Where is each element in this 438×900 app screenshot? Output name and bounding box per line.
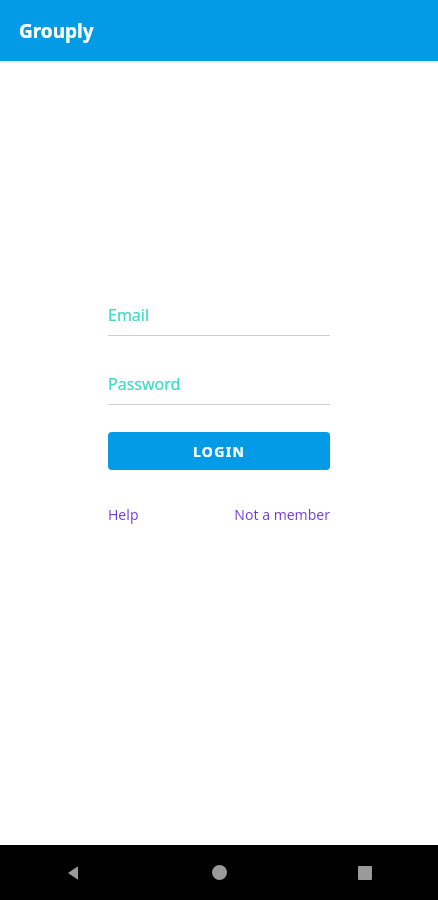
- button[interactable]: Help: [108, 505, 139, 524]
- button[interactable]: Password: [108, 368, 330, 405]
- button[interactable]: Recent apps: [292, 845, 438, 900]
- staticText: Help: [108, 505, 139, 524]
- staticText: Password: [108, 373, 181, 395]
- button[interactable]: Email: [108, 299, 330, 336]
- button[interactable]: Back: [0, 845, 146, 900]
- button[interactable]: LOGIN: [108, 432, 330, 470]
- staticText: Email: [108, 304, 150, 326]
- button[interactable]: Not a member: [234, 505, 330, 524]
- staticText: Not a member: [234, 505, 330, 524]
- button[interactable]: Home: [146, 845, 292, 900]
- staticText: LOGIN: [193, 442, 246, 461]
- staticText: Grouply: [19, 18, 94, 44]
